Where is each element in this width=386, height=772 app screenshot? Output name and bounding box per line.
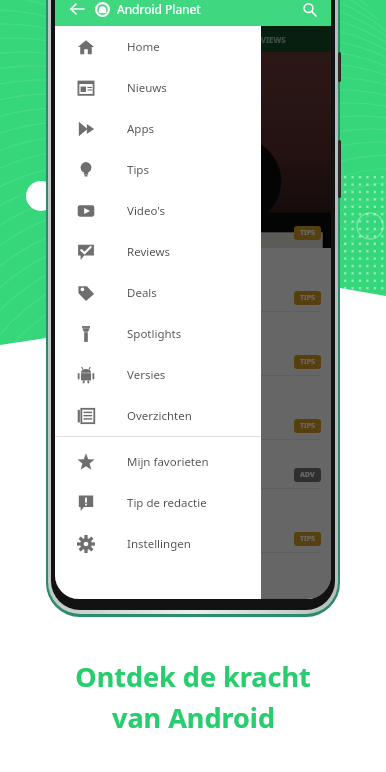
staticText: REVIEWS [251, 34, 286, 45]
staticText: Ontdek de kracht [75, 658, 311, 695]
button[interactable]: Wifi-hotspot maken met [55, 312, 331, 376]
staticText: Tips [127, 162, 149, 178]
staticText: Home [127, 39, 160, 55]
staticText: TIPS [300, 421, 315, 431]
staticText: van Android [112, 699, 275, 736]
staticText: 2 uur [67, 293, 87, 304]
button[interactable]: Video's [55, 190, 261, 231]
staticText: Spotlights [127, 326, 182, 342]
staticText: Instellingen [127, 536, 191, 552]
button[interactable]: Tips [55, 149, 261, 190]
staticText: 2 uur [67, 534, 87, 545]
button[interactable]: Instellingen [55, 523, 261, 564]
staticText: TIPS [300, 357, 315, 367]
button[interactable]: Search [297, 0, 321, 21]
staticText: TIPS [300, 293, 315, 303]
button[interactable]: Reviews [55, 231, 261, 272]
staticText: Deals [127, 285, 157, 301]
staticText: Overzichten [127, 408, 192, 424]
button[interactable]: Overzichten [55, 395, 261, 436]
button[interactable]: Goedkoop abonnement met ↗ [55, 440, 331, 489]
staticText: Wifi-hotspot maken met [67, 320, 192, 335]
button[interactable]: Plus kijken? Probeer [55, 376, 331, 440]
staticText: TIPS [300, 534, 315, 544]
button[interactable]: Mijn favorieten [55, 441, 261, 482]
button[interactable]: Versies [55, 354, 261, 395]
button[interactable]: Nieuws [55, 67, 261, 108]
staticText: Mijn favorieten [127, 454, 209, 470]
staticText: Tip de redactie [127, 495, 207, 511]
button[interactable]: Apps [55, 108, 261, 149]
staticText: Reviews [127, 244, 171, 260]
staticText: 2 uur [67, 357, 87, 368]
staticText: Video's [127, 203, 166, 219]
button[interactable]: Tip de redactie [55, 482, 261, 523]
button[interactable]: Deals [55, 272, 261, 313]
staticText: Apps [127, 121, 155, 137]
staticText: Versies [127, 367, 166, 383]
staticText: (met video!) [67, 335, 128, 350]
staticText: Amazon Prime [67, 192, 170, 212]
staticText: Overzetten van je oude naar [67, 497, 214, 512]
staticText: Android Planet [117, 1, 201, 17]
staticText: ADV [300, 470, 315, 480]
button[interactable]: Apps installeren: zo krijg je [55, 248, 331, 312]
staticText: TIPS [300, 228, 315, 238]
staticText: Apps installeren: zo krijg je [67, 256, 206, 271]
button[interactable]: Overzetten van je oude naar [55, 489, 331, 553]
button[interactable]: Spotlights [55, 313, 261, 354]
staticText: Goedkoop abonnement met ↗ [67, 448, 226, 463]
button[interactable]: Home [55, 26, 261, 67]
staticText: deze dingen [67, 399, 131, 414]
staticText: Nieuws [127, 80, 167, 96]
staticText: 2 uur [67, 421, 87, 432]
button[interactable]: Back [65, 0, 89, 21]
button[interactable]: Cache wissen op je [55, 553, 331, 599]
